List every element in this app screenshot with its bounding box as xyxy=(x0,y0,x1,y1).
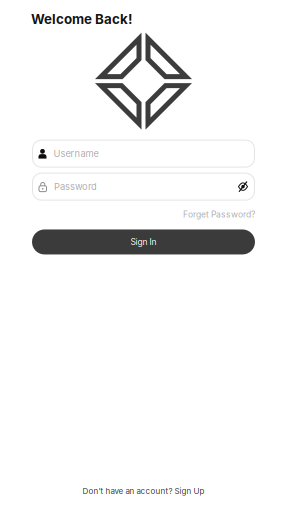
button[interactable]: Password xyxy=(32,173,254,200)
button[interactable]: Don't have an account? Sign Up xyxy=(82,486,204,496)
staticText: Don't have an account? Sign Up xyxy=(82,486,204,496)
staticText: Sign In xyxy=(130,237,156,247)
button[interactable]: Forget Password? xyxy=(183,209,255,219)
staticText: Password xyxy=(54,181,97,192)
button[interactable]: Sign In xyxy=(32,229,255,254)
staticText: Username xyxy=(53,148,98,159)
staticText: Forget Password? xyxy=(183,209,255,219)
button[interactable]: Username xyxy=(32,140,254,167)
staticText: Welcome Back! xyxy=(31,11,133,27)
